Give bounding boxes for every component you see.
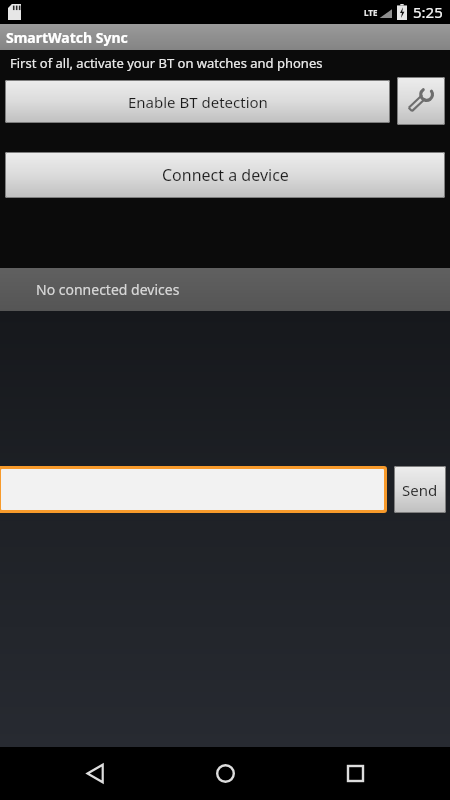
button[interactable]: Send xyxy=(394,466,446,513)
staticText: SmartWatch Sync xyxy=(6,28,128,47)
button[interactable]: Settings xyxy=(397,77,445,125)
button[interactable]: Enable BT detection xyxy=(5,80,390,123)
staticText: 5:25 xyxy=(413,2,443,22)
staticText: Connect a device xyxy=(162,164,289,186)
button[interactable]: Home xyxy=(190,747,260,800)
staticText: First of all, activate your BT on watche… xyxy=(10,54,323,72)
staticText: Enable BT detection xyxy=(128,92,268,112)
staticText: Send xyxy=(402,480,438,500)
button[interactable]: Back xyxy=(60,747,130,800)
button[interactable]: Connect a device xyxy=(5,152,445,198)
staticText: No connected devices xyxy=(36,280,180,299)
button[interactable]: No connected devices xyxy=(0,268,450,311)
button[interactable]: Recent apps xyxy=(320,747,390,800)
staticText: LTE xyxy=(364,7,378,18)
